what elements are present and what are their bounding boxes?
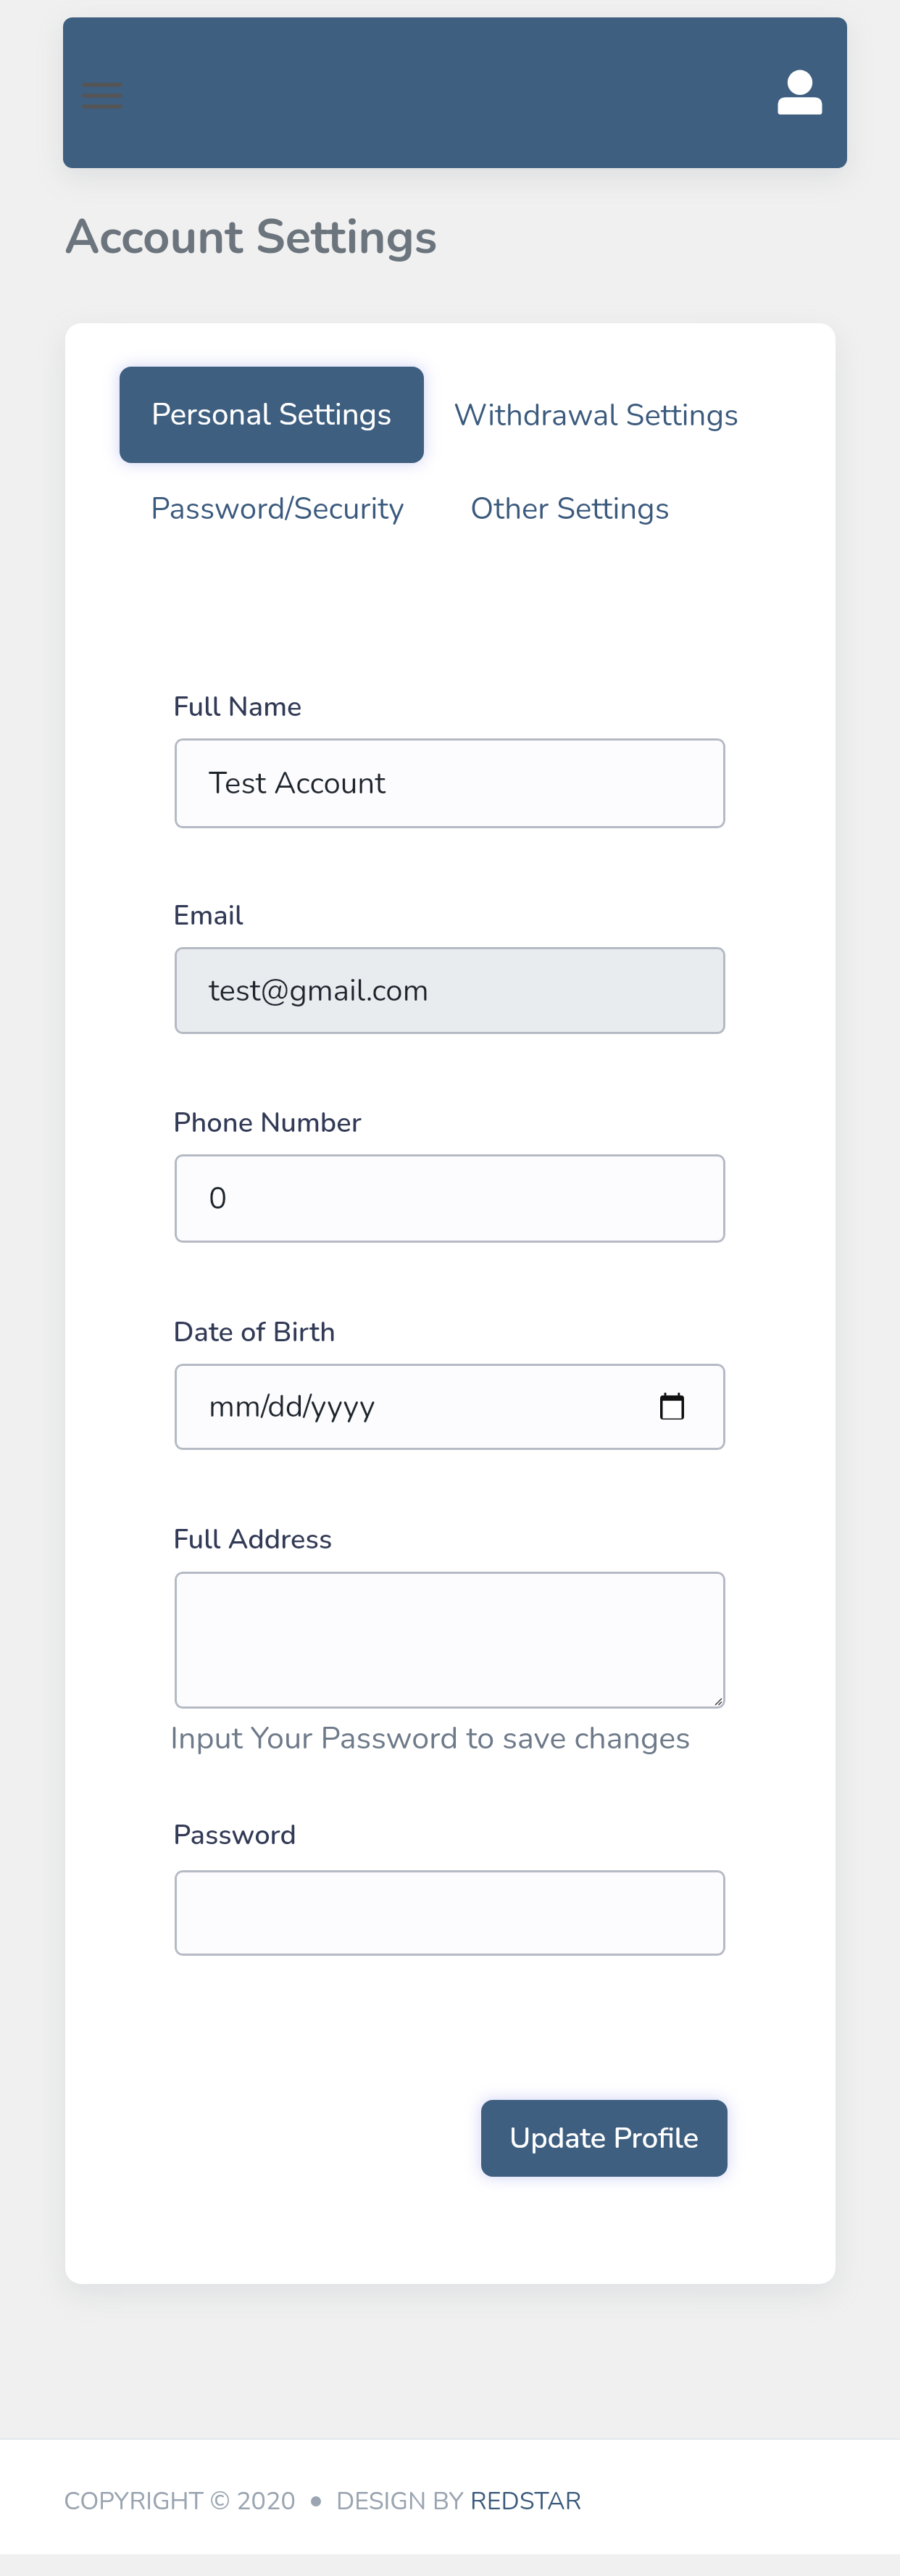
staticText: Full Address bbox=[173, 1521, 333, 1559]
button[interactable]: test@gmail.com bbox=[175, 947, 725, 1034]
button[interactable]: Account profile bbox=[767, 49, 833, 119]
button[interactable]: Update Profile bbox=[481, 2100, 728, 2177]
button[interactable]: REDSTAR bbox=[470, 2485, 582, 2518]
staticText: COPYRIGHT © 2020 bbox=[64, 2485, 296, 2518]
staticText: Password bbox=[173, 1817, 296, 1854]
staticText: Update Profile bbox=[509, 2119, 699, 2159]
button[interactable]: Other Settings bbox=[422, 475, 717, 543]
button[interactable]: Password/Security bbox=[137, 475, 417, 543]
button[interactable]: 0 bbox=[175, 1154, 725, 1243]
staticText: DESIGN BY bbox=[336, 2485, 470, 2518]
button[interactable]: Test Account bbox=[175, 738, 725, 828]
staticText: Full Name bbox=[173, 688, 302, 726]
staticText: Phone Number bbox=[173, 1104, 362, 1142]
button[interactable]: Withdrawal Settings bbox=[433, 367, 759, 463]
staticText: Other Settings bbox=[470, 488, 670, 530]
staticText: Password/Security bbox=[151, 488, 404, 530]
button[interactable]: Open navigation menu bbox=[70, 63, 135, 107]
staticText: Input Your Password to save changes bbox=[170, 1717, 691, 1760]
staticText: test@gmail.com bbox=[209, 970, 429, 1012]
staticText: Withdrawal Settings bbox=[454, 395, 739, 436]
staticText: 0 bbox=[209, 1178, 228, 1220]
staticText: Date of Birth bbox=[173, 1314, 336, 1351]
staticText: Email bbox=[173, 897, 243, 935]
button[interactable]: Personal Settings bbox=[120, 367, 424, 463]
button[interactable] bbox=[175, 1572, 725, 1709]
button[interactable]: mm/dd/yyyy bbox=[175, 1364, 725, 1450]
staticText: Test Account bbox=[209, 763, 386, 804]
staticText: mm/dd/yyyy bbox=[209, 1386, 375, 1427]
button[interactable] bbox=[175, 1870, 725, 1956]
staticText: Account Settings bbox=[64, 205, 438, 270]
staticText: Personal Settings bbox=[151, 394, 392, 435]
